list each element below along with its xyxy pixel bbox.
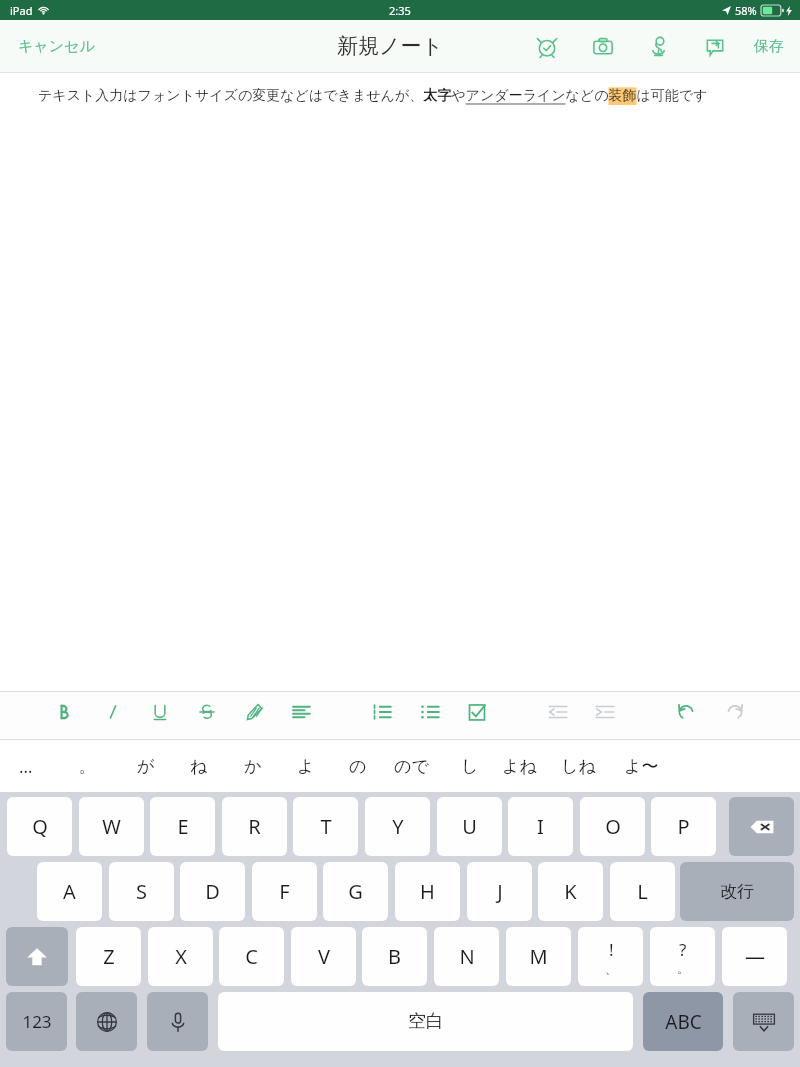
button[interactable]: L xyxy=(610,862,675,921)
button[interactable]: Numbered list xyxy=(362,692,402,732)
staticText: 保存 xyxy=(754,37,784,56)
button[interactable]: R xyxy=(222,797,287,856)
staticText: T xyxy=(320,813,332,840)
staticText: S xyxy=(136,878,147,905)
button[interactable]: S xyxy=(109,862,174,921)
button[interactable]: の xyxy=(332,740,384,792)
button[interactable]: E xyxy=(150,797,215,856)
staticText: D xyxy=(205,878,220,905)
button[interactable]: が xyxy=(120,740,172,792)
button[interactable]: M xyxy=(506,927,571,986)
button[interactable]: し xyxy=(444,740,496,792)
button[interactable]: O xyxy=(580,797,645,856)
button[interactable]: Change keyboard xyxy=(76,992,137,1051)
button[interactable]: Z xyxy=(76,927,141,986)
button[interactable]: Shift xyxy=(6,927,68,986)
button[interactable]: Camera xyxy=(586,30,620,64)
staticText: P xyxy=(677,813,690,840)
button[interactable]: X xyxy=(148,927,213,986)
button[interactable]: … xyxy=(0,740,52,792)
button[interactable]: Highlight xyxy=(234,692,274,732)
staticText: 空白 xyxy=(408,1010,444,1033)
staticText: V xyxy=(318,943,330,970)
button[interactable]: ね xyxy=(173,740,225,792)
button[interactable]: I xyxy=(508,797,573,856)
button[interactable]: F xyxy=(252,862,317,921)
button[interactable]: よね xyxy=(493,740,545,792)
button[interactable]: Redo xyxy=(715,692,755,732)
staticText: iPad xyxy=(10,3,33,18)
button[interactable]: U xyxy=(437,797,502,856)
button[interactable]: よ〜 xyxy=(615,740,667,792)
staticText: の xyxy=(349,756,367,777)
button[interactable]: Align xyxy=(281,692,321,732)
button[interactable]: Reminder xyxy=(530,30,564,64)
button[interactable]: Italic xyxy=(93,692,133,732)
button[interactable]: Strikethrough xyxy=(187,692,227,732)
staticText: H xyxy=(420,878,435,905)
staticText: W xyxy=(102,813,121,840)
button[interactable]: G xyxy=(323,862,388,921)
button[interactable]: ABC xyxy=(643,992,723,1051)
staticText: J xyxy=(497,878,503,905)
button[interactable]: Q xyxy=(7,797,72,856)
button[interactable]: V xyxy=(291,927,356,986)
staticText: ので xyxy=(394,756,429,777)
button[interactable]: ので xyxy=(385,740,437,792)
staticText: L xyxy=(637,878,648,905)
staticText: Y xyxy=(392,813,404,840)
staticText: 2:35 xyxy=(389,3,411,18)
button[interactable]: 空白 xyxy=(218,992,633,1051)
button[interactable]: Dictation xyxy=(147,992,208,1051)
button[interactable]: 改行 xyxy=(680,862,794,921)
button[interactable]: よ xyxy=(280,740,332,792)
button[interactable]: ? xyxy=(650,927,715,986)
button[interactable]: Outdent xyxy=(538,692,578,732)
staticText: G xyxy=(348,878,363,905)
button[interactable]: D xyxy=(180,862,245,921)
staticText: 123 xyxy=(22,1010,52,1033)
button[interactable]: Underline xyxy=(140,692,180,732)
button[interactable]: Bold xyxy=(46,692,86,732)
staticText: B xyxy=(388,943,401,970)
button[interactable]: W xyxy=(79,797,144,856)
button[interactable]: Bulleted list xyxy=(410,692,450,732)
button[interactable]: Y xyxy=(365,797,430,856)
staticText: 改行 xyxy=(720,881,754,902)
staticText: が xyxy=(137,756,155,777)
button[interactable]: C xyxy=(219,927,284,986)
staticText: テキスト入力はフォントサイズの変更などはできませんが、太字やアンダーラインなどの… xyxy=(38,87,708,105)
button[interactable]: Indent xyxy=(585,692,625,732)
button[interactable]: N xyxy=(434,927,499,986)
button[interactable]: A xyxy=(37,862,102,921)
staticText: O xyxy=(605,813,621,840)
button[interactable]: B xyxy=(362,927,427,986)
button[interactable]: H xyxy=(395,862,460,921)
button[interactable]: 。 xyxy=(61,740,113,792)
button[interactable]: J xyxy=(467,862,532,921)
button[interactable]: 123 xyxy=(6,992,67,1051)
button[interactable]: Checklist xyxy=(457,692,497,732)
button[interactable]: Voice memo xyxy=(642,30,676,64)
staticText: E xyxy=(177,813,189,840)
button[interactable]: — xyxy=(722,927,787,986)
button[interactable]: P xyxy=(651,797,716,856)
button[interactable]: T xyxy=(293,797,358,856)
button[interactable]: Hide keyboard xyxy=(733,992,794,1051)
button[interactable]: キャンセル xyxy=(8,29,105,64)
button[interactable]: Undo xyxy=(666,692,706,732)
button[interactable]: か xyxy=(227,740,279,792)
staticText: よ〜 xyxy=(624,756,659,777)
staticText: A xyxy=(63,878,76,905)
staticText: F xyxy=(279,878,290,905)
staticText: — xyxy=(745,943,765,970)
button[interactable]: Backspace xyxy=(729,797,794,856)
button[interactable]: K xyxy=(538,862,603,921)
staticText: C xyxy=(245,943,258,970)
button[interactable]: ! xyxy=(578,927,643,986)
staticText: ね xyxy=(190,756,208,777)
staticText: キャンセル xyxy=(18,37,95,56)
button[interactable]: 保存 xyxy=(746,29,792,64)
button[interactable]: Share xyxy=(698,30,732,64)
button[interactable]: しね xyxy=(552,740,604,792)
